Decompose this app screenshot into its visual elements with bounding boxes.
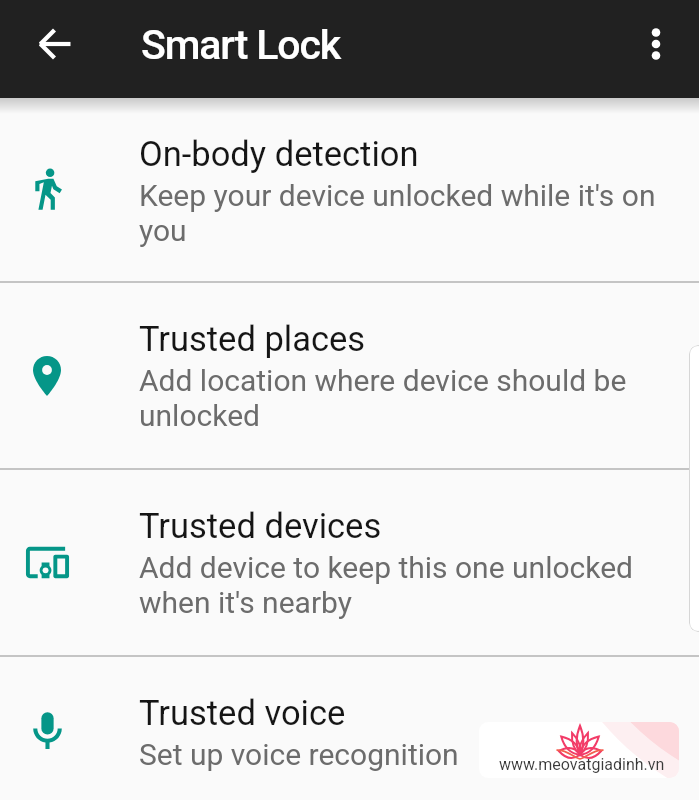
button[interactable]: Devices: [0, 470, 699, 655]
button[interactable]: More options: [628, 16, 684, 72]
staticText: On-body detection: [139, 134, 669, 174]
button[interactable]: Microphone: [0, 657, 699, 800]
staticText: Trusted places: [139, 319, 669, 359]
other: Location pin: [0, 283, 139, 468]
staticText: Trusted voice: [139, 693, 669, 733]
staticText: Add location where device should be unlo…: [139, 363, 669, 433]
staticText: www.meovatgiadinh.vn: [499, 755, 665, 774]
button[interactable]: Walking person: [0, 98, 699, 281]
other: Devices: [0, 470, 139, 655]
button[interactable]: Back: [27, 16, 83, 72]
button[interactable]: Location pin: [0, 283, 699, 468]
staticText: Trusted devices: [139, 506, 669, 546]
other: Microphone: [0, 657, 139, 800]
staticText: Keep your device unlocked while it's on …: [139, 178, 669, 248]
other: Walking person: [0, 98, 139, 281]
staticText: Add device to keep this one unlocked whe…: [139, 550, 669, 620]
staticText: Smart Lock: [141, 21, 341, 69]
staticText: Set up voice recognition: [139, 737, 669, 772]
